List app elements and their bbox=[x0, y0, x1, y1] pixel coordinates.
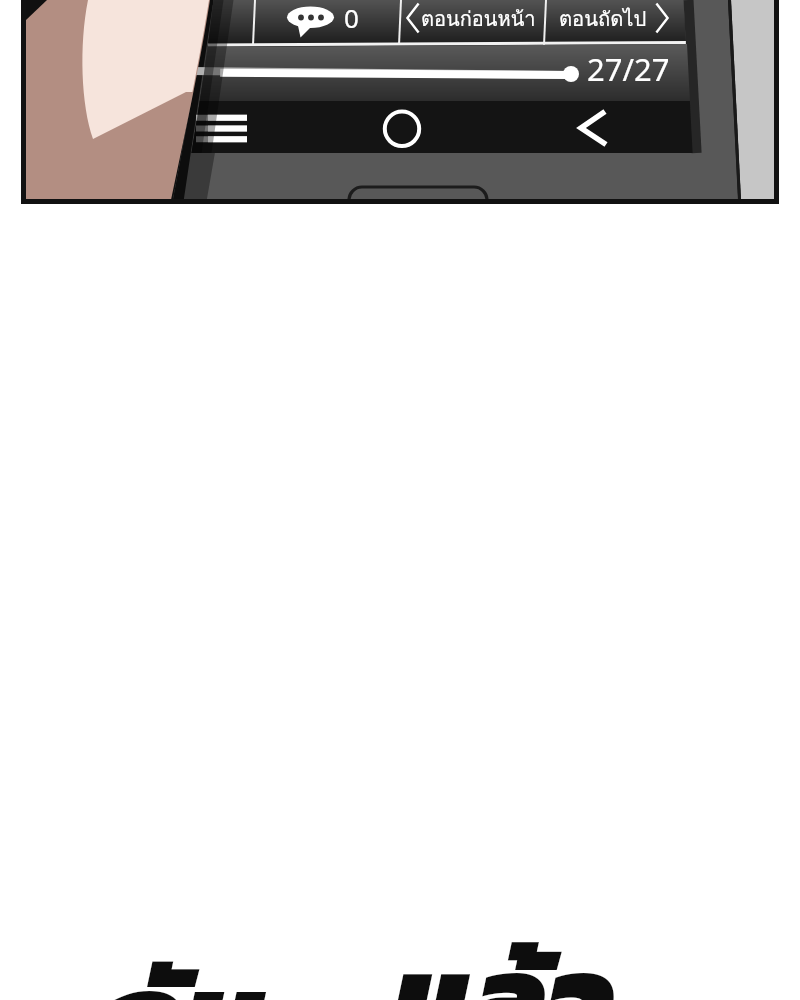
button[interactable]: Webtoon reader on phone bbox=[0, 0, 800, 1000]
